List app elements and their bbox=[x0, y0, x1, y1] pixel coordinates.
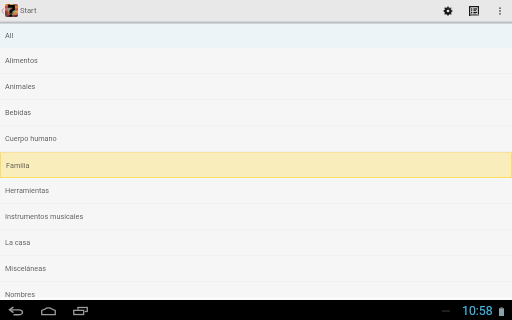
button[interactable]: Instrumentos musicales bbox=[0, 204, 512, 230]
button[interactable]: Settings bbox=[435, 0, 461, 21]
button[interactable]: Back bbox=[0, 300, 32, 320]
staticText: Animales bbox=[5, 82, 36, 91]
staticText: Bebidas bbox=[5, 108, 32, 117]
staticText: Alimentos bbox=[5, 56, 38, 65]
staticText: Nombres bbox=[5, 290, 35, 299]
button[interactable]: Alimentos bbox=[0, 48, 512, 74]
button[interactable]: Nombres bbox=[0, 282, 512, 300]
staticText: Misceláneas bbox=[5, 264, 46, 273]
staticText: Herramientas bbox=[5, 186, 50, 195]
staticText: Cuerpo humano bbox=[5, 134, 57, 143]
button[interactable]: Misceláneas bbox=[0, 256, 512, 282]
button[interactable]: More options bbox=[487, 0, 512, 21]
staticText: Instrumentos musicales bbox=[5, 212, 84, 221]
staticText: Start bbox=[20, 6, 37, 15]
staticText: 10:58 bbox=[462, 304, 493, 318]
staticText: Familia bbox=[6, 161, 30, 170]
button[interactable]: Familia bbox=[0, 152, 512, 178]
button[interactable]: Recents bbox=[64, 300, 96, 320]
button[interactable]: Cuerpo humano bbox=[0, 126, 512, 152]
button[interactable]: Lists bbox=[461, 0, 487, 21]
button[interactable]: All bbox=[0, 22, 512, 48]
staticText: La casa bbox=[5, 238, 31, 247]
button[interactable]: La casa bbox=[0, 230, 512, 256]
staticText: All bbox=[5, 31, 14, 40]
button[interactable]: Bebidas bbox=[0, 100, 512, 126]
button[interactable]: Herramientas bbox=[0, 178, 512, 204]
button[interactable]: Animales bbox=[0, 74, 512, 100]
button[interactable]: Start bbox=[0, 0, 37, 21]
button[interactable]: Home bbox=[32, 300, 64, 320]
